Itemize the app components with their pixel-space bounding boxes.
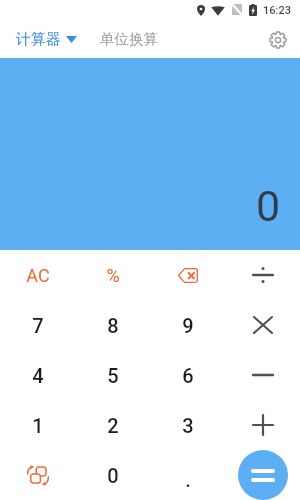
staticText: 5	[107, 364, 119, 387]
button[interactable]: 单位换算	[100, 30, 158, 48]
button[interactable]: Unit convert	[0, 450, 75, 500]
button[interactable]: Equals	[238, 450, 288, 500]
staticText: 6	[182, 364, 194, 387]
button[interactable]: Minus	[225, 350, 300, 400]
button[interactable]: %	[75, 250, 150, 300]
button[interactable]: Multiply	[225, 300, 300, 350]
button[interactable]: 0	[75, 450, 150, 500]
button[interactable]: .	[150, 450, 225, 500]
staticText: 1	[32, 414, 44, 437]
button[interactable]: 2	[75, 400, 150, 450]
button[interactable]: 9	[150, 300, 225, 350]
staticText: 0	[107, 464, 119, 487]
button[interactable]: AC	[0, 250, 75, 300]
staticText: 8	[107, 314, 119, 337]
staticText: 3	[182, 414, 194, 437]
staticText: 4	[32, 364, 44, 387]
button[interactable]: 5	[75, 350, 150, 400]
button[interactable]: 6	[150, 350, 225, 400]
staticText: 计算器	[16, 30, 61, 49]
staticText: AC	[26, 265, 50, 286]
staticText: .	[185, 468, 191, 491]
button[interactable]: Divide	[225, 250, 300, 300]
button[interactable]: Plus	[225, 400, 300, 450]
button[interactable]: 8	[75, 300, 150, 350]
staticText: 2	[107, 414, 119, 437]
button[interactable]: Backspace	[150, 250, 225, 300]
button[interactable]: 计算器	[16, 30, 77, 49]
staticText: 7	[32, 314, 44, 337]
button[interactable]: 1	[0, 400, 75, 450]
staticText: 0	[256, 181, 281, 231]
button[interactable]: Settings	[264, 26, 292, 54]
staticText: %	[106, 265, 120, 286]
staticText: 16:23	[263, 4, 291, 17]
button[interactable]: 4	[0, 350, 75, 400]
button[interactable]: 3	[150, 400, 225, 450]
staticText: 9	[182, 314, 194, 337]
button[interactable]: 7	[0, 300, 75, 350]
